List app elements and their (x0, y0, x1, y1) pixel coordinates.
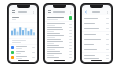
button[interactable] (45, 38, 74, 41)
button[interactable] (45, 22, 74, 26)
button[interactable] (82, 21, 111, 26)
button[interactable] (45, 35, 74, 38)
button[interactable] (45, 56, 74, 59)
button[interactable]: More options (31, 10, 35, 14)
button[interactable] (45, 41, 74, 44)
button[interactable] (9, 23, 37, 38)
button[interactable] (82, 16, 111, 21)
button[interactable] (82, 53, 111, 58)
button[interactable]: Menu (47, 10, 51, 14)
button[interactable] (45, 15, 74, 21)
button[interactable] (45, 50, 74, 53)
button[interactable] (45, 26, 74, 29)
button[interactable] (82, 26, 111, 31)
button[interactable] (82, 42, 111, 47)
button[interactable]: More options (68, 10, 72, 14)
button[interactable] (45, 32, 74, 35)
button[interactable] (82, 32, 111, 37)
button[interactable]: Back (84, 10, 88, 14)
button[interactable] (45, 29, 74, 32)
button[interactable] (45, 44, 74, 47)
button[interactable] (9, 50, 37, 55)
button[interactable]: Menu (11, 10, 15, 14)
button[interactable] (45, 53, 74, 56)
button[interactable] (82, 37, 111, 42)
button[interactable] (9, 45, 37, 50)
button[interactable] (9, 55, 37, 59)
button[interactable]: More options (105, 10, 109, 14)
button[interactable] (45, 47, 74, 50)
button[interactable] (82, 58, 111, 59)
button[interactable] (82, 47, 111, 52)
